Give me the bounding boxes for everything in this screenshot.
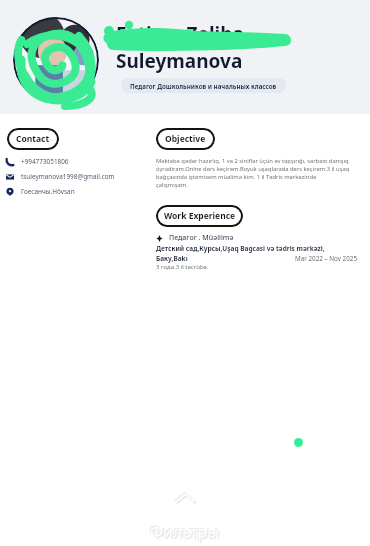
button[interactable]: Status — [294, 438, 303, 447]
staticText: Work Experience — [164, 210, 236, 222]
staticText: tsuleymanova1998@gmail.com — [21, 172, 115, 181]
staticText: Suleymanova — [116, 48, 243, 74]
button[interactable]: Objective — [156, 128, 215, 150]
staticText: Фильтры — [151, 522, 221, 544]
staticText: Fatima Zeliha — [116, 21, 245, 47]
staticText: Детский сад,Курсы,Uşaq Bagcasi və tədris… — [156, 244, 325, 253]
staticText: 3 года.3 il təcrübə. — [156, 263, 209, 271]
staticText: Фильтры — [149, 520, 219, 542]
staticText: Məktəbə qədər hazırlıq. 1 və 2 siniflər … — [156, 157, 350, 189]
button[interactable]: tsuleymanova1998@gmail.com — [0, 169, 152, 184]
button[interactable]: +994773051806 — [0, 154, 152, 169]
staticText: Педагог . Müəllimə — [169, 233, 234, 243]
staticText: Баку,Bakı — [156, 254, 188, 263]
staticText: +994773051806 — [21, 157, 69, 166]
button[interactable]: Фильтры — [150, 489, 220, 546]
button[interactable]: Contact — [7, 128, 59, 150]
staticText: Гоесанчы.Hövsan — [21, 187, 75, 196]
staticText: Objective — [165, 133, 206, 145]
staticText: Фильтры — [150, 521, 220, 543]
staticText: Contact — [16, 133, 50, 145]
staticText: Mar 2022 – Nov 2025 — [295, 254, 358, 263]
button[interactable]: Гоесанчы.Hövsan — [0, 184, 152, 199]
button[interactable]: Педагог Дошкольников и начальных классов — [121, 78, 286, 93]
staticText: Педагог Дошкольников и начальных классов — [130, 82, 277, 90]
button[interactable]: Work Experience — [156, 205, 243, 227]
